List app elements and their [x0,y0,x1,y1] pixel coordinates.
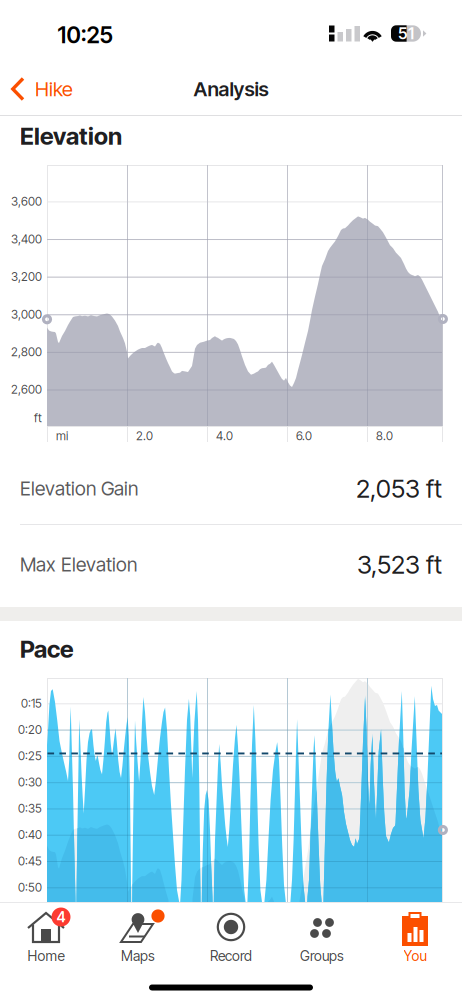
button[interactable]: Max Elevation [0,531,462,598]
staticText: 4 [56,908,65,926]
staticText: Analysis [193,77,268,101]
staticText: You [403,947,426,964]
button[interactable]: Record [196,905,266,967]
button[interactable]: 4 [16,905,76,967]
button[interactable]: Hike [0,67,85,111]
staticText: 0:40 [18,827,42,842]
staticText: 0:20 [18,722,42,737]
staticText: 0:15 [21,696,42,710]
staticText: Home [27,947,64,964]
staticText: 0:45 [18,854,42,868]
staticText: 3,400 [11,232,42,246]
staticText: Hike [35,77,73,101]
staticText: 0:50 [18,880,42,894]
staticText: 2,600 [11,382,42,397]
staticText: 10:25 [57,21,112,49]
staticText: 2,053 ft [356,473,442,504]
staticText: Groups [300,947,344,964]
button[interactable]: Groups [287,905,357,967]
staticText: 0:25 [18,749,42,763]
staticText: 2.0 [136,429,153,443]
staticText: 0:35 [18,801,42,816]
staticText: Pace [20,634,74,663]
staticText: 51 [398,24,414,43]
staticText: 8.0 [376,429,393,443]
staticText: mi [56,429,68,443]
staticText: 3,000 [11,307,42,321]
staticText: ft [34,411,42,425]
staticText: 2,800 [11,345,42,359]
staticText: 6.0 [296,429,312,443]
staticText: 4.0 [216,429,233,443]
staticText: 3,200 [11,269,42,284]
button[interactable]: You [380,905,450,967]
staticText: Record [210,947,252,964]
staticText: Elevation Gain [20,477,138,500]
staticText: Elevation [20,121,122,150]
staticText: 3,523 ft [357,549,442,580]
staticText: Max Elevation [20,553,137,576]
staticText: 0:30 [18,775,42,789]
staticText: 3,600 [11,194,42,209]
staticText: Maps [121,947,155,964]
button[interactable]: Elevation Gain [0,455,462,522]
button[interactable]: Maps [103,905,173,967]
